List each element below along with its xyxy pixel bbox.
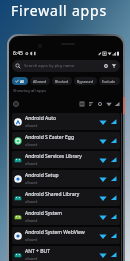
button[interactable]: Blocked [52, 77, 72, 85]
staticText: Search apps by pkg name [24, 63, 75, 69]
button[interactable]: Excluded [99, 77, 120, 85]
staticText: Bypassed [77, 79, 94, 84]
button[interactable]: Android Setup [12, 170, 120, 187]
staticText: Android System [25, 210, 63, 217]
staticText: ANT + BUT [25, 248, 50, 255]
staticText: allowed [25, 180, 38, 185]
button[interactable]: Allowed [30, 77, 50, 85]
staticText: allowed [25, 142, 38, 147]
staticText: Android System WebView [25, 229, 85, 236]
staticText: allowed [25, 123, 38, 128]
button[interactable]: Grid view [79, 101, 85, 107]
button[interactable]: Sort [103, 63, 109, 69]
staticText: Excluded [102, 79, 117, 84]
staticText: allowed [25, 237, 38, 242]
staticText: 6:45 [13, 50, 23, 57]
button[interactable]: ANT + BUT [12, 246, 120, 261]
button[interactable]: Data filter [114, 101, 120, 107]
staticText: All [20, 79, 25, 84]
button[interactable]: Android S Easter Egg [12, 132, 120, 149]
button[interactable]: Android Shared Library [12, 189, 120, 206]
button[interactable]: Settings [97, 101, 103, 107]
button[interactable]: Wifi filter [106, 101, 112, 107]
staticText: Firewall apps [11, 1, 107, 20]
staticText: allowed [25, 256, 38, 261]
button[interactable]: Android System WebView [12, 227, 120, 244]
button[interactable]: Bypassed [74, 77, 97, 85]
staticText: Showing all apps [13, 88, 47, 94]
staticText: Android Auto [25, 115, 57, 122]
button[interactable]: Android Auto [12, 113, 120, 130]
staticText: Android Shared Library [25, 191, 80, 198]
button[interactable]: Filter [111, 63, 117, 69]
staticText: Android Services Library [25, 153, 82, 160]
button[interactable]: Info [13, 101, 19, 107]
button[interactable]: Android System [12, 208, 120, 225]
button[interactable]: Sort [88, 101, 94, 107]
staticText: allowed [25, 199, 38, 204]
button[interactable]: Search apps by pkg name [12, 60, 120, 72]
staticText: Android Setup [25, 172, 59, 179]
staticText: allowed [25, 161, 38, 166]
staticText: Allowed [33, 79, 47, 84]
staticText: Blocked [55, 79, 69, 84]
button[interactable]: All [12, 77, 28, 85]
staticText: allowed [25, 218, 38, 223]
staticText: Android S Easter Egg [25, 134, 74, 141]
button[interactable]: Android Services Library [12, 151, 120, 168]
